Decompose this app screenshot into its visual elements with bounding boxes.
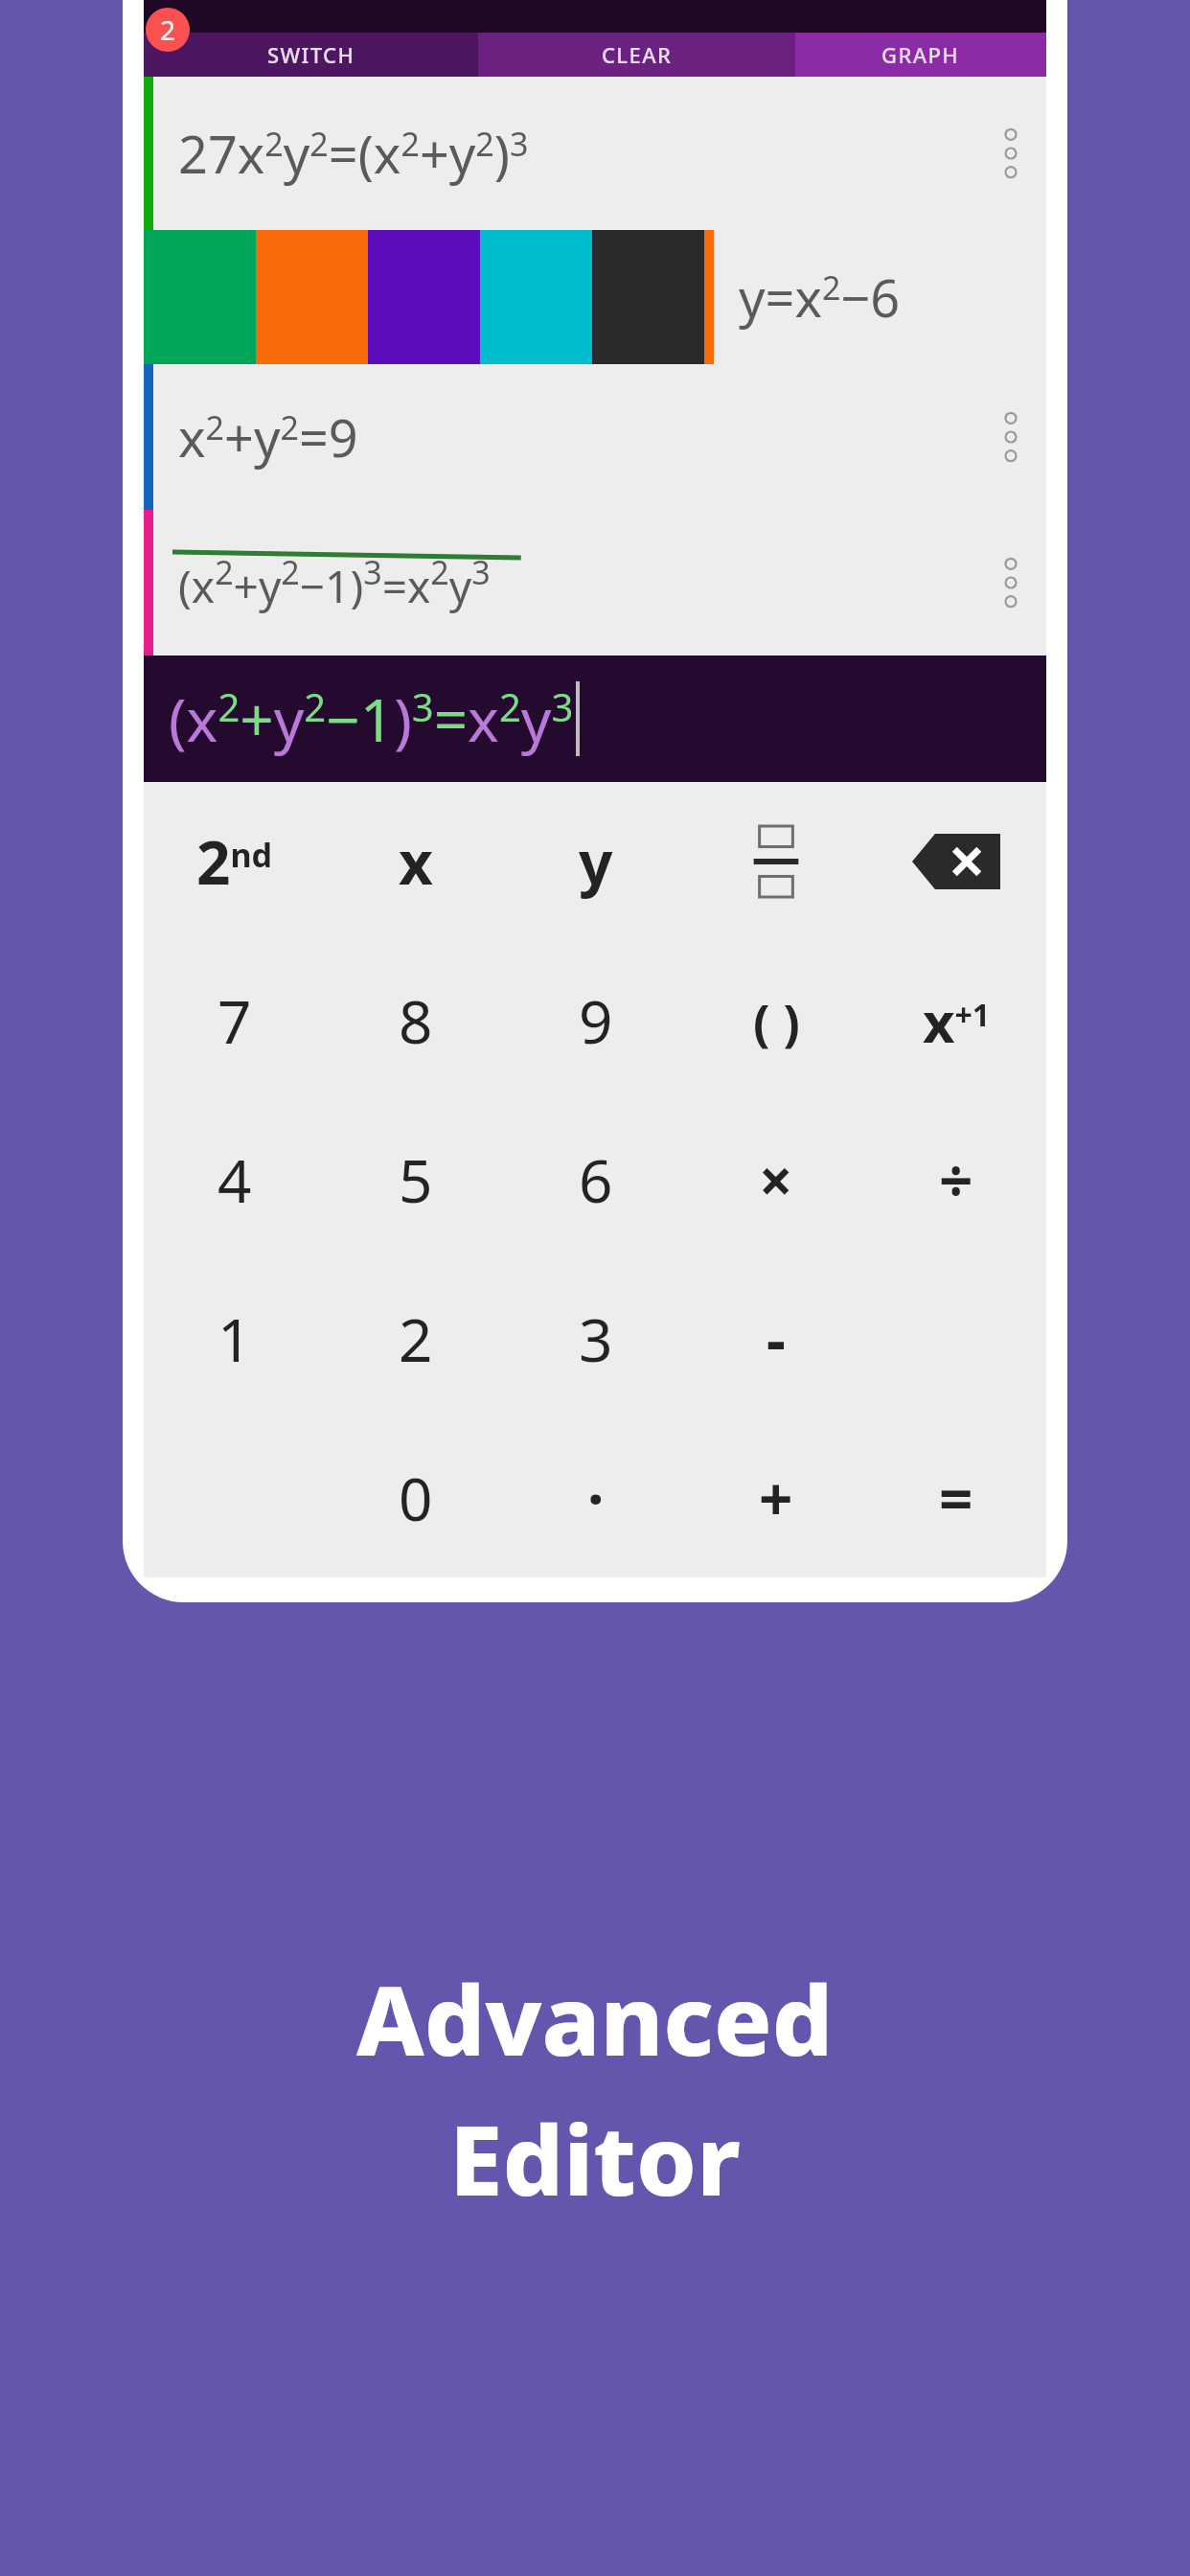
staticText: y <box>579 821 613 902</box>
staticText: - <box>767 1299 786 1379</box>
staticText: 2 <box>399 1299 433 1379</box>
staticText: 8 <box>399 980 433 1061</box>
staticText: 4 <box>217 1139 252 1220</box>
staticText: 1 <box>217 1299 252 1379</box>
staticText: ( ) <box>753 987 800 1055</box>
button[interactable]: 27x2y2=(x2+y2)3 <box>144 77 1046 230</box>
button[interactable]: 9 <box>506 941 686 1100</box>
staticText: (x2+y2−1)3=x2y3 <box>169 678 574 759</box>
button[interactable]: SWITCH <box>144 33 478 77</box>
staticText: x2+y2=9 <box>178 402 358 472</box>
staticText: 9 <box>579 980 613 1061</box>
staticText: Advanced <box>356 1953 834 2083</box>
staticText: ÷ <box>939 1139 973 1220</box>
button[interactable]: x2+y2=9 <box>144 364 1046 510</box>
button[interactable]: 6 <box>506 1100 686 1259</box>
staticText: 7 <box>217 980 252 1061</box>
staticText: = <box>939 1458 973 1538</box>
staticText: 0 <box>399 1458 433 1538</box>
staticText: x+1 <box>923 983 991 1059</box>
button[interactable]: More options <box>975 77 1046 230</box>
staticText: 3 <box>579 1299 613 1379</box>
button[interactable]: ( ) <box>686 941 866 1100</box>
button[interactable]: More options <box>975 364 1046 510</box>
button[interactable]: + <box>686 1418 866 1577</box>
staticText: + <box>759 1458 793 1538</box>
button[interactable]: (x2+y2−1)3=x2y3 <box>144 510 1046 655</box>
staticText: (x2+y2−1)3=x2y3 <box>178 550 491 615</box>
button[interactable]: · <box>506 1418 686 1577</box>
button[interactable]: - <box>686 1259 866 1418</box>
staticText: 2nd <box>196 821 273 902</box>
button[interactable]: Fraction <box>686 782 866 941</box>
staticText: GRAPH <box>881 40 960 69</box>
button[interactable]: 5 <box>325 1100 506 1259</box>
button[interactable]: y <box>506 782 686 941</box>
button[interactable]: Colour swatch <box>480 230 592 364</box>
staticText: Editor <box>449 2093 741 2223</box>
button[interactable]: 7 <box>144 941 325 1100</box>
staticText: · <box>587 1458 605 1538</box>
staticText: x <box>399 821 433 902</box>
button[interactable]: y=x2−6 <box>739 230 1046 364</box>
staticText: y=x2−6 <box>739 262 901 333</box>
button[interactable]: ÷ <box>866 1100 1046 1259</box>
staticText: 2 <box>160 11 176 48</box>
staticText: 27x2y2=(x2+y2)3 <box>178 118 529 189</box>
button[interactable]: 3 <box>506 1259 686 1418</box>
button[interactable]: 1 <box>144 1259 325 1418</box>
button[interactable]: CLEAR <box>478 33 795 77</box>
button[interactable]: x <box>325 782 506 941</box>
button[interactable]: Colour swatch <box>592 230 704 364</box>
staticText: 6 <box>579 1139 613 1220</box>
button[interactable]: × <box>686 1100 866 1259</box>
staticText: × <box>759 1139 793 1220</box>
button[interactable]: 2nd <box>144 782 325 941</box>
staticText: SWITCH <box>267 40 355 69</box>
button[interactable]: More options <box>975 510 1046 655</box>
button[interactable]: = <box>866 1418 1046 1577</box>
button[interactable]: x+1 <box>866 941 1046 1100</box>
button[interactable]: Delete <box>866 782 1046 941</box>
button[interactable]: 2 notifications <box>146 8 190 52</box>
button[interactable]: 8 <box>325 941 506 1100</box>
staticText: 5 <box>399 1139 433 1220</box>
button[interactable]: (x2+y2−1)3=x2y3 <box>144 655 1046 782</box>
button[interactable]: 0 <box>325 1418 506 1577</box>
button[interactable]: 2 <box>325 1259 506 1418</box>
button[interactable]: GRAPH <box>795 33 1046 77</box>
button[interactable]: 4 <box>144 1100 325 1259</box>
staticText: CLEAR <box>602 40 673 69</box>
